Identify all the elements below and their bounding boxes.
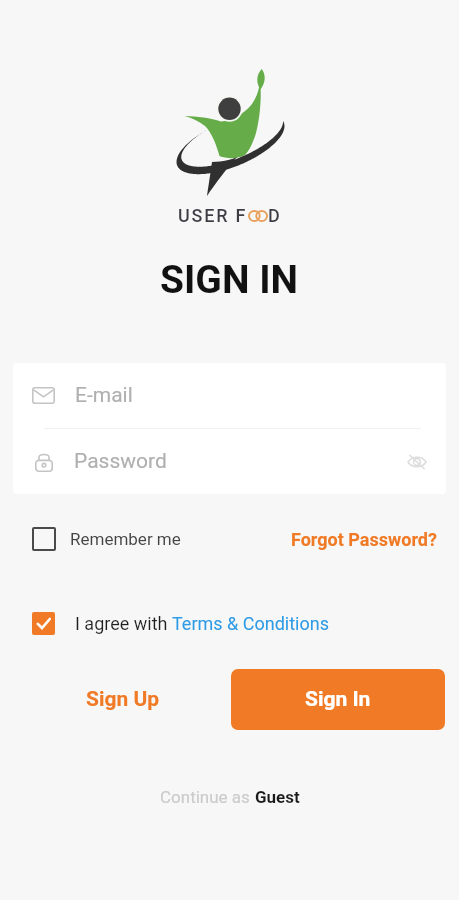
button[interactable]: Remember me — [32, 527, 181, 551]
button[interactable]: I agree with — [32, 612, 437, 635]
button[interactable]: Show password — [400, 445, 434, 479]
staticText: D — [268, 205, 282, 226]
button[interactable]: E-mail — [13, 363, 446, 428]
button[interactable]: Continue as — [160, 787, 300, 807]
staticText: Remember me — [70, 529, 181, 549]
staticText: Terms & Conditions — [172, 613, 329, 634]
button[interactable]: Forgot Password? — [291, 529, 437, 550]
button[interactable]: Sign Up — [62, 669, 184, 730]
staticText: E-mail — [75, 383, 133, 408]
staticText: Continue as — [160, 787, 255, 807]
staticText: Guest — [255, 787, 300, 807]
button[interactable]: Password — [13, 429, 446, 494]
button[interactable]: Sign In — [231, 669, 445, 730]
staticText: Password — [74, 449, 167, 474]
staticText: Sign Up — [86, 687, 160, 712]
staticText: SIGN IN — [160, 257, 299, 303]
staticText: I agree with — [75, 613, 172, 634]
staticText: Forgot Password? — [291, 529, 437, 550]
staticText: USER F — [178, 205, 248, 226]
staticText: Sign In — [305, 687, 371, 712]
